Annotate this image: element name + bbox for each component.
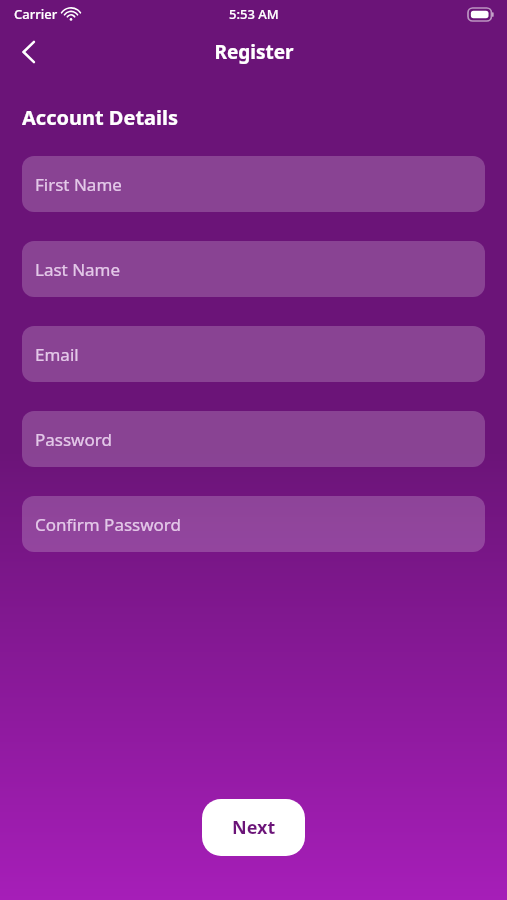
button[interactable]: Back [6,30,50,74]
staticText: Confirm Password [35,513,181,536]
staticText: 5:53 AM [229,5,279,23]
button[interactable]: First Name [22,156,485,212]
staticText: Carrier [14,5,58,23]
button[interactable]: Last Name [22,241,485,297]
staticText: First Name [35,173,122,196]
button[interactable]: Confirm Password [22,496,485,552]
staticText: Next [232,815,276,840]
staticText: Password [35,428,112,451]
staticText: Register [214,39,294,65]
staticText: Account Details [22,104,179,131]
staticText: Last Name [35,258,121,281]
staticText: Email [35,343,79,366]
button[interactable]: Password [22,411,485,467]
button[interactable]: Email [22,326,485,382]
button[interactable]: Next [202,799,305,856]
